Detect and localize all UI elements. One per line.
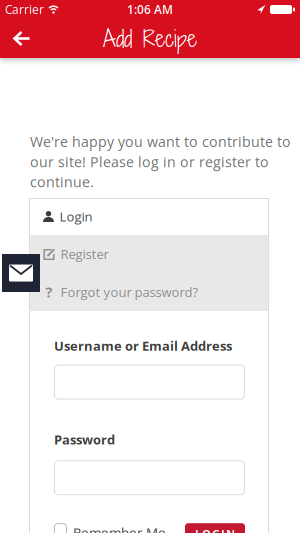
- button[interactable]: Register: [29, 235, 269, 273]
- staticText: LOGIN: [195, 526, 235, 533]
- button[interactable]: Username or Email Address: [54, 365, 245, 400]
- staticText: We're happy you want to contribute to: [30, 132, 291, 151]
- staticText: continue.: [30, 172, 94, 191]
- button[interactable]: Login: [29, 198, 269, 235]
- staticText: Username or Email Address: [54, 337, 232, 355]
- staticText: Register: [60, 245, 108, 263]
- button[interactable]: Feedback: [2, 254, 40, 292]
- staticText: 1:06 AM: [127, 1, 173, 18]
- staticText: ?: [45, 282, 52, 302]
- staticText: Password: [54, 431, 115, 448]
- staticText: Add Recipe: [103, 23, 197, 54]
- button[interactable]: Password: [54, 460, 245, 495]
- staticText: Remember Me: [73, 523, 166, 533]
- staticText: Login: [59, 208, 92, 225]
- button[interactable]: ?: [29, 273, 269, 311]
- button[interactable]: LOGIN: [185, 523, 245, 533]
- staticText: Carrier: [5, 1, 44, 18]
- button[interactable]: Back: [0, 19, 41, 58]
- button[interactable]: Remember Me: [54, 523, 166, 533]
- staticText: our site! Please log in or register to: [30, 152, 269, 171]
- staticText: Forgot your password?: [60, 283, 198, 301]
